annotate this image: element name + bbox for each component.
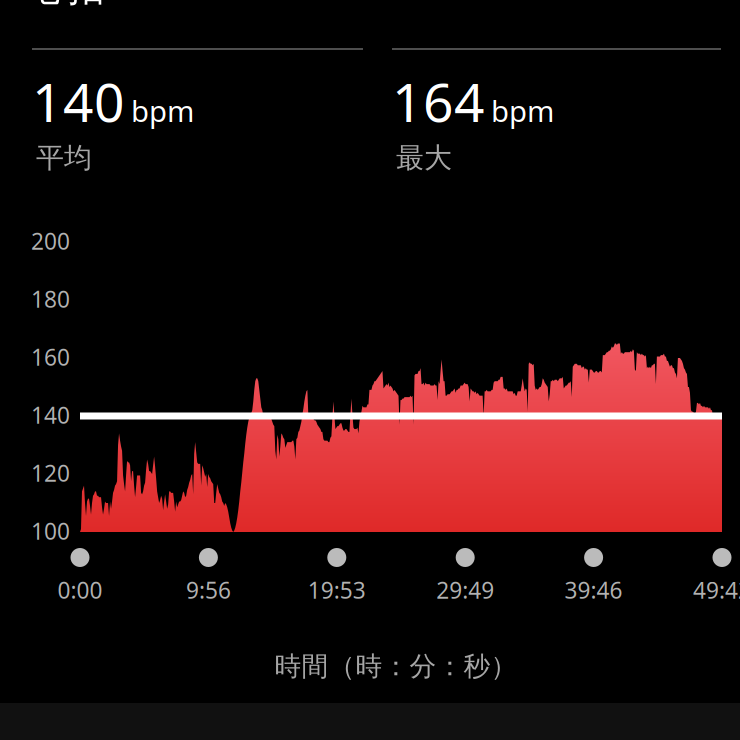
staticText: 29:49 [436,575,494,605]
button[interactable]: 140 [32,66,363,175]
staticText: 19:53 [308,575,366,605]
staticText: bpm [491,91,554,130]
staticText: 140 [32,66,125,137]
staticText: 140 [31,400,70,430]
staticText: 最大 [396,141,452,175]
staticText: 時間（時：分：秒） [274,650,517,683]
staticText: 39:46 [565,575,623,605]
staticText: 平均 [36,141,92,175]
staticText: 9:56 [186,575,231,605]
staticText: 0:00 [57,575,102,605]
staticText: 49:42 [693,575,740,605]
staticText: 180 [31,284,70,314]
button[interactable]: 164 [392,66,721,175]
staticText: bpm [131,91,194,130]
staticText: 心拍 [30,0,104,11]
staticText: 120 [31,458,70,488]
staticText: 160 [31,342,70,372]
staticText: 200 [31,226,70,256]
staticText: 100 [31,516,70,546]
staticText: 164 [392,66,485,137]
